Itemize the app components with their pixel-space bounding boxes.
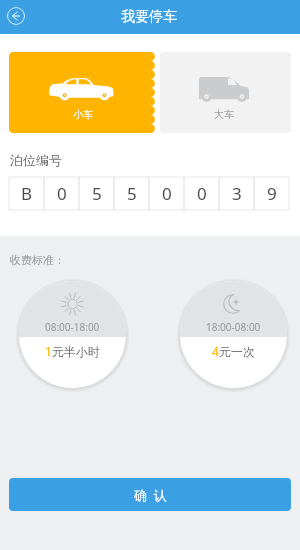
staticText: 4元一次: [212, 343, 255, 359]
button[interactable]: 5: [114, 177, 149, 210]
staticText: 3: [232, 182, 242, 205]
button[interactable]: 小车: [9, 52, 155, 133]
staticText: 5: [127, 182, 137, 205]
staticText: 0: [57, 182, 67, 205]
staticText: 0: [162, 182, 172, 205]
staticText: 9: [267, 182, 277, 205]
staticText: 收费标准：: [10, 253, 65, 267]
button[interactable]: 大车: [160, 52, 291, 133]
button[interactable]: 9: [254, 177, 289, 210]
staticText: B: [21, 182, 33, 205]
button[interactable]: 18:00-08:00: [180, 281, 287, 388]
staticText: 5: [92, 182, 102, 205]
button[interactable]: 确 认: [9, 478, 291, 511]
button[interactable]: B: [9, 177, 44, 210]
staticText: 确 认: [134, 486, 167, 504]
staticText: 小车: [73, 108, 93, 121]
button[interactable]: 0: [44, 177, 79, 210]
staticText: 大车: [214, 108, 234, 121]
button[interactable]: Back: [7, 7, 25, 25]
staticText: 08:00-18:00: [45, 320, 100, 334]
button[interactable]: 0: [184, 177, 219, 210]
staticText: 我要停车: [121, 8, 177, 26]
button[interactable]: 3: [219, 177, 254, 210]
button[interactable]: 5: [79, 177, 114, 210]
staticText: 18:00-08:00: [206, 320, 261, 334]
staticText: 0: [197, 182, 207, 205]
button[interactable]: 0: [149, 177, 184, 210]
button[interactable]: 08:00-18:00: [19, 281, 126, 388]
staticText: 1元半小时: [45, 343, 100, 359]
staticText: 泊位编号: [10, 152, 62, 168]
